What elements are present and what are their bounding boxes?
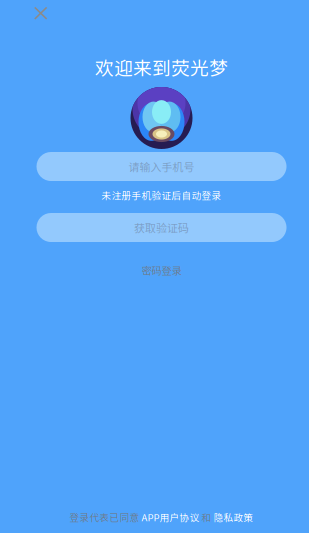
staticText: 未注册手机验证后自动登录 xyxy=(101,188,221,202)
button[interactable]: Close xyxy=(26,0,56,28)
button[interactable]: 获取验证码 xyxy=(36,213,286,242)
staticText: 请输入手机号 xyxy=(128,159,194,174)
button[interactable]: 密码登录 xyxy=(131,259,191,281)
staticText: APP用户协议 xyxy=(141,510,199,524)
staticText: 密码登录 xyxy=(141,263,181,277)
staticText: 欢迎来到荧光梦 xyxy=(95,53,228,81)
button[interactable]: APP用户协议 xyxy=(141,510,199,524)
staticText: 获取验证码 xyxy=(134,220,189,235)
button[interactable]: 隐私政策 xyxy=(213,510,253,524)
staticText: 登录代表已同意 xyxy=(69,510,141,524)
staticText: 隐私政策 xyxy=(213,510,253,524)
staticText: 和 xyxy=(199,510,213,524)
